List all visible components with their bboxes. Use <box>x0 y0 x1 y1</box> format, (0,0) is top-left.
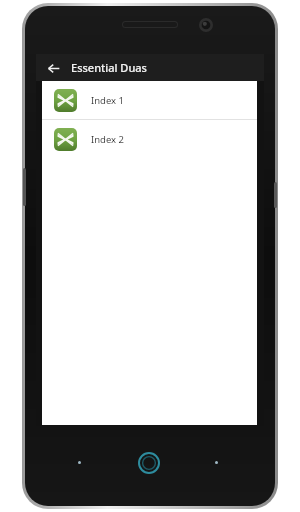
button[interactable]: Index 1 <box>42 81 257 119</box>
staticText: Index 2 <box>91 133 125 146</box>
staticText: Essential Duas <box>71 60 147 75</box>
other: Home <box>138 452 160 474</box>
other: Recents <box>78 461 81 464</box>
staticText: Index 1 <box>91 94 125 107</box>
other: Back <box>215 461 218 464</box>
button[interactable]: Index 2 <box>42 120 257 158</box>
button[interactable]: Back <box>43 58 63 78</box>
